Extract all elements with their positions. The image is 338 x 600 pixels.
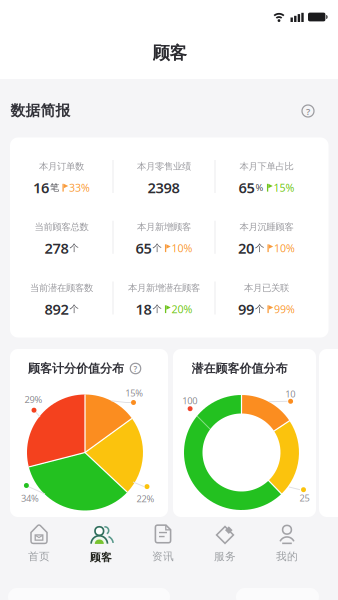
staticText: 数据简报	[10, 101, 70, 119]
staticText: 278	[44, 238, 68, 258]
staticText: 10	[285, 388, 295, 400]
button[interactable]: 帮助	[301, 104, 315, 118]
staticText: 首页	[28, 550, 50, 563]
button[interactable]: 顾客	[72, 521, 130, 565]
staticText: 个	[69, 303, 78, 315]
staticText: 个	[255, 303, 264, 315]
staticText: 65	[238, 178, 254, 197]
staticText: 本月零售业绩	[137, 161, 191, 172]
staticText: 10%	[171, 241, 192, 255]
staticText: 20	[238, 238, 254, 258]
staticText: 顾客	[152, 42, 186, 64]
staticText: 99	[238, 299, 254, 319]
staticText: 25	[299, 492, 309, 504]
staticText: 潜在顾客价值分布	[191, 361, 287, 376]
staticText: 18	[135, 299, 151, 319]
staticText: 本月下单占比	[239, 161, 293, 172]
staticText: 65	[135, 238, 151, 258]
staticText: 资讯	[152, 550, 174, 563]
button[interactable]: 首页	[10, 521, 68, 565]
staticText: 当前顾客总数	[34, 221, 88, 233]
button[interactable]: 服务	[196, 521, 254, 565]
staticText: ?	[306, 105, 310, 118]
staticText: 顾客	[90, 551, 112, 564]
staticText: 本月新增顾客	[137, 221, 191, 233]
staticText: 个	[152, 242, 161, 254]
staticText: ?	[133, 364, 137, 374]
staticText: 个	[255, 242, 264, 254]
staticText: 100	[182, 394, 197, 407]
staticText: 34%	[21, 492, 39, 504]
staticText: 我的	[276, 550, 298, 563]
staticText: 当前潜在顾客数	[30, 282, 93, 294]
staticText: 服务	[214, 550, 236, 563]
staticText: 笔	[50, 182, 59, 193]
staticText: 29%	[24, 393, 42, 406]
staticText: 16	[33, 178, 49, 197]
staticText: 本月新增潜在顾客	[128, 282, 200, 294]
staticText: 99%	[274, 302, 295, 316]
staticText: 本月已关联	[244, 282, 289, 294]
staticText: 顾客计分价值分布	[28, 361, 124, 376]
staticText: 892	[44, 299, 68, 319]
staticText: 10%	[274, 241, 295, 255]
staticText: 本月订单数	[39, 161, 84, 172]
staticText: 22%	[136, 492, 154, 505]
staticText: %	[255, 181, 263, 194]
staticText: 个	[152, 303, 161, 315]
staticText: 2398	[147, 178, 179, 197]
button[interactable]: 资讯	[134, 521, 192, 565]
staticText: 个	[69, 242, 78, 254]
staticText: 20%	[171, 302, 192, 316]
staticText: 15%	[273, 180, 294, 195]
button[interactable]: 我的	[258, 521, 316, 565]
staticText: 本月沉睡顾客	[239, 221, 293, 233]
staticText: 33%	[69, 180, 90, 195]
staticText: 15%	[125, 387, 143, 399]
button[interactable]: 帮助	[129, 362, 142, 375]
